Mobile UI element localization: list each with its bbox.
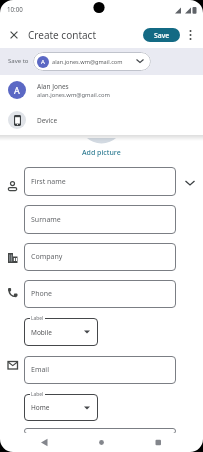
button[interactable] (185, 25, 196, 45)
staticText: Device (37, 116, 58, 125)
button[interactable]: Home (24, 394, 98, 421)
button[interactable]: Phone (24, 280, 176, 308)
staticText: 10:00 (7, 5, 23, 13)
button[interactable] (88, 433, 114, 452)
button[interactable]: A (33, 52, 151, 71)
staticText: Phone (31, 289, 53, 299)
button[interactable]: A (0, 75, 203, 105)
staticText: alan.jones.wm@gmail.com (37, 91, 111, 99)
button[interactable]: Add picture (82, 148, 121, 158)
button[interactable]: Save (143, 28, 180, 42)
staticText: Label (31, 315, 44, 322)
staticText: Mobile (31, 328, 52, 337)
staticText: Label (31, 391, 44, 398)
staticText: alan.jones.wm@gmail.com (52, 58, 123, 66)
button[interactable] (183, 177, 197, 189)
staticText: Alan Jones (37, 82, 69, 91)
staticText: First name (31, 177, 66, 187)
button[interactable] (34, 433, 60, 452)
button[interactable] (7, 28, 21, 42)
staticText: Company (31, 252, 63, 262)
button[interactable]: Device (0, 105, 203, 135)
staticText: Email (31, 365, 49, 375)
staticText: A (41, 58, 45, 66)
staticText: Save to (8, 57, 29, 65)
button[interactable] (145, 433, 171, 452)
button[interactable]: Email (24, 356, 176, 384)
button[interactable]: Mobile (24, 318, 98, 346)
staticText: Save (154, 31, 170, 40)
button[interactable]: Company (24, 243, 176, 271)
button[interactable]: First name (24, 167, 176, 196)
staticText: Create contact (28, 28, 97, 42)
staticText: Surname (31, 215, 61, 225)
staticText: Home (31, 403, 50, 412)
button[interactable]: Surname (24, 205, 176, 234)
staticText: A (14, 84, 20, 96)
